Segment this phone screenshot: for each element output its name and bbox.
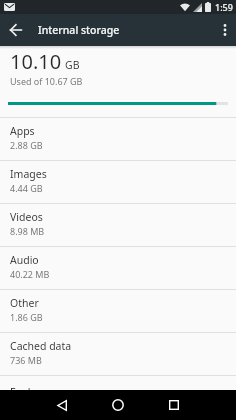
staticText: Audio xyxy=(10,253,39,267)
staticText: Internal storage xyxy=(38,23,120,37)
button[interactable] xyxy=(146,390,202,420)
staticText: Used of 10.67 GB xyxy=(10,75,83,87)
button[interactable] xyxy=(214,14,236,46)
staticText: GB xyxy=(65,58,80,72)
button[interactable]: Apps xyxy=(0,118,236,160)
staticText: 4.44 GB xyxy=(10,182,43,194)
button[interactable]: Other xyxy=(0,290,236,332)
staticText: 736 MB xyxy=(10,354,42,366)
staticText: Images xyxy=(10,167,47,181)
staticText: Cached data xyxy=(10,339,72,353)
staticText: 40.22 MB xyxy=(10,268,50,280)
staticText: 2.88 GB xyxy=(10,139,43,151)
staticText: Explore xyxy=(10,385,47,399)
staticText: 10.10 xyxy=(10,48,62,75)
button[interactable]: Images xyxy=(0,161,236,203)
button[interactable]: Audio xyxy=(0,247,236,289)
button[interactable]: Internal storage xyxy=(0,14,236,46)
staticText: 1.86 GB xyxy=(10,311,43,323)
staticText: 8.98 MB xyxy=(10,225,45,237)
staticText: Other xyxy=(10,296,39,310)
button[interactable] xyxy=(90,390,146,420)
button[interactable]: Cached data xyxy=(0,333,236,375)
button[interactable] xyxy=(0,14,32,46)
staticText: 1:59 xyxy=(215,1,233,13)
button[interactable]: Videos xyxy=(0,204,236,246)
button[interactable] xyxy=(34,390,90,420)
staticText: Videos xyxy=(10,210,43,224)
staticText: Apps xyxy=(10,124,35,138)
